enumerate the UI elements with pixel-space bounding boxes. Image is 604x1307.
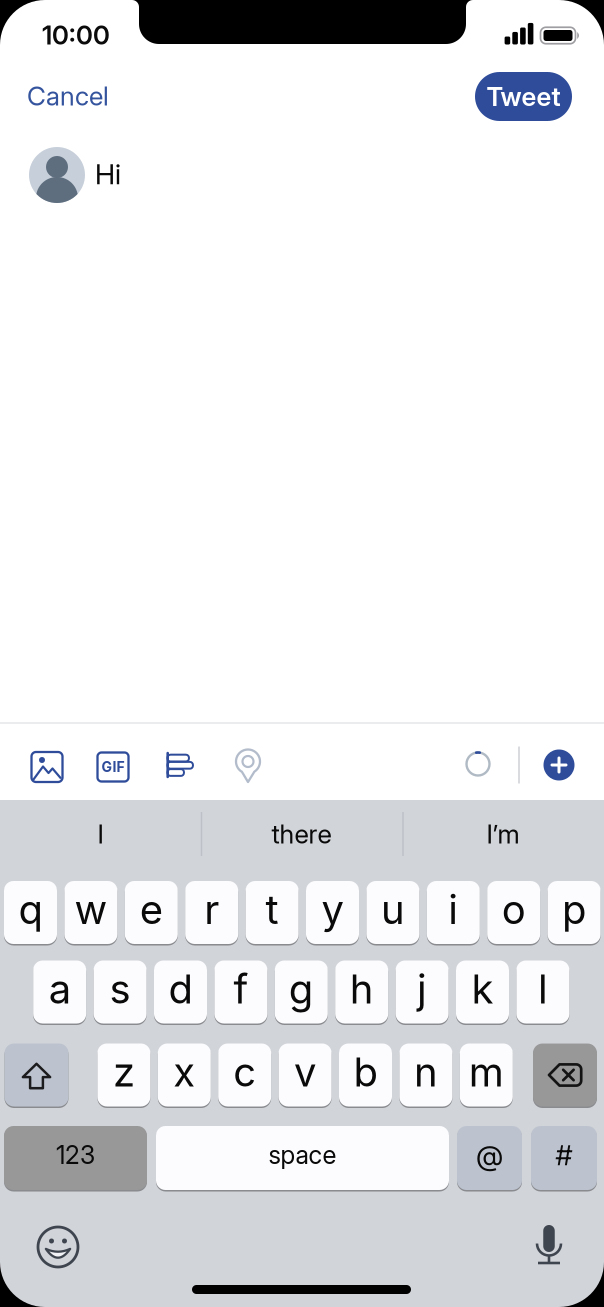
button[interactable]: Add location bbox=[234, 748, 262, 784]
staticText: l bbox=[538, 965, 548, 1013]
staticText: m bbox=[469, 1048, 504, 1096]
button[interactable]: u bbox=[366, 880, 419, 945]
staticText: w bbox=[74, 886, 107, 933]
staticText: d bbox=[168, 965, 192, 1013]
button[interactable]: Delete bbox=[533, 1042, 597, 1107]
staticText: I bbox=[97, 819, 103, 849]
button[interactable]: Add poll bbox=[163, 751, 195, 778]
staticText: space bbox=[268, 1140, 336, 1170]
button[interactable]: e bbox=[125, 880, 178, 945]
button[interactable]: Add GIF bbox=[96, 750, 130, 784]
button[interactable]: # bbox=[531, 1125, 597, 1191]
staticText: e bbox=[140, 886, 163, 933]
button[interactable]: f bbox=[214, 959, 267, 1024]
staticText: i bbox=[448, 886, 458, 933]
button[interactable]: h bbox=[335, 959, 388, 1024]
staticText: t bbox=[266, 886, 279, 933]
button[interactable]: c bbox=[218, 1042, 271, 1107]
staticText: o bbox=[502, 886, 526, 933]
button[interactable]: k bbox=[456, 959, 509, 1024]
button[interactable]: Tweet bbox=[475, 72, 572, 121]
button[interactable]: i bbox=[427, 880, 480, 945]
staticText: p bbox=[562, 886, 586, 933]
staticText: Hi bbox=[95, 157, 121, 190]
staticText: z bbox=[113, 1048, 135, 1096]
button[interactable]: d bbox=[154, 959, 207, 1024]
button[interactable]: z bbox=[97, 1042, 150, 1107]
staticText: b bbox=[353, 1048, 377, 1096]
button[interactable]: Add photo bbox=[30, 750, 64, 784]
staticText: @ bbox=[476, 1138, 503, 1171]
button[interactable]: g bbox=[275, 959, 328, 1024]
button[interactable]: l bbox=[516, 959, 569, 1024]
staticText: f bbox=[233, 965, 248, 1013]
button[interactable]: Emoji bbox=[36, 1225, 80, 1269]
staticText: Tweet bbox=[486, 81, 560, 112]
staticText: x bbox=[173, 1048, 195, 1096]
staticText: # bbox=[555, 1138, 572, 1171]
button[interactable]: I’m bbox=[408, 799, 598, 869]
button[interactable]: 123 bbox=[4, 1125, 147, 1191]
staticText: c bbox=[233, 1048, 256, 1096]
button[interactable]: s bbox=[94, 959, 147, 1024]
button[interactable]: r bbox=[185, 880, 238, 945]
staticText: a bbox=[49, 965, 71, 1013]
button[interactable]: @ bbox=[457, 1125, 522, 1191]
button[interactable]: q bbox=[4, 880, 57, 945]
staticText: 10:00 bbox=[42, 20, 110, 50]
button[interactable]: m bbox=[460, 1042, 513, 1107]
button[interactable]: p bbox=[548, 880, 601, 945]
staticText: k bbox=[471, 965, 493, 1013]
staticText: g bbox=[289, 965, 314, 1013]
button[interactable]: Add another Tweet bbox=[543, 749, 574, 780]
button[interactable]: space bbox=[156, 1125, 449, 1191]
button[interactable]: y bbox=[306, 880, 359, 945]
staticText: y bbox=[321, 886, 343, 933]
button[interactable]: x bbox=[158, 1042, 211, 1107]
button[interactable]: n bbox=[399, 1042, 452, 1107]
staticText: I’m bbox=[486, 819, 519, 849]
staticText: q bbox=[18, 886, 42, 933]
button[interactable]: o bbox=[487, 880, 540, 945]
button[interactable]: Dictate bbox=[534, 1222, 564, 1264]
button[interactable]: j bbox=[396, 959, 449, 1024]
staticText: GIF bbox=[101, 759, 124, 775]
staticText: s bbox=[110, 965, 131, 1013]
staticText: there bbox=[271, 819, 331, 849]
button[interactable]: Shift bbox=[4, 1042, 68, 1107]
button[interactable]: Cancel bbox=[27, 81, 109, 111]
staticText: r bbox=[204, 886, 219, 933]
staticText: 123 bbox=[56, 1140, 95, 1170]
button[interactable]: a bbox=[33, 959, 86, 1024]
staticText: n bbox=[414, 1048, 438, 1096]
button[interactable]: v bbox=[279, 1042, 332, 1107]
staticText: j bbox=[417, 965, 427, 1013]
staticText: h bbox=[350, 965, 374, 1013]
staticText: Cancel bbox=[27, 81, 109, 111]
staticText: u bbox=[381, 886, 405, 933]
staticText: v bbox=[294, 1048, 316, 1096]
button[interactable]: I bbox=[5, 799, 195, 869]
button[interactable]: there bbox=[206, 799, 396, 869]
button[interactable]: w bbox=[64, 880, 117, 945]
button[interactable]: b bbox=[339, 1042, 392, 1107]
button[interactable]: t bbox=[246, 880, 299, 945]
